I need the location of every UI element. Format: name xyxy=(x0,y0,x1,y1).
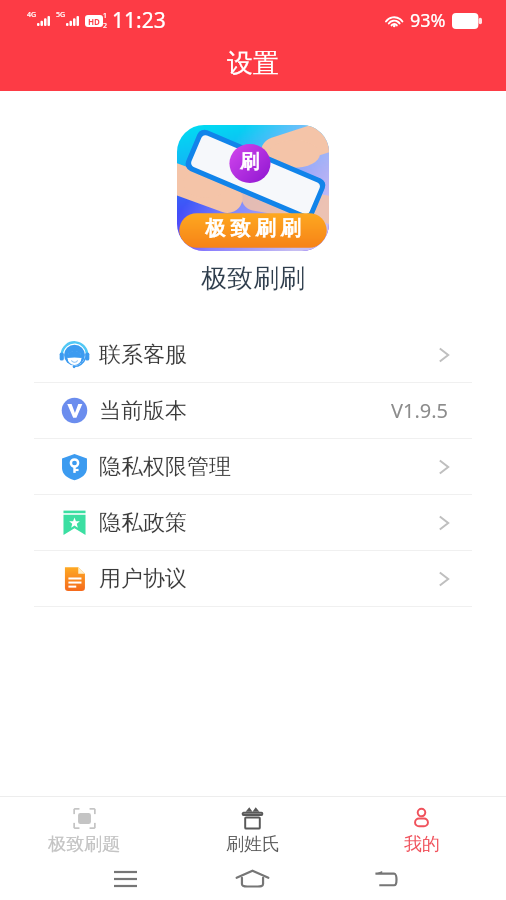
staticText: 刷姓氏 xyxy=(226,833,280,856)
staticText: 1 xyxy=(103,11,108,21)
staticText: 2 xyxy=(103,21,108,31)
staticText: 联系客服 xyxy=(99,341,187,369)
button[interactable]: Recents xyxy=(62,857,189,900)
staticText: 隐私政策 xyxy=(99,509,187,537)
staticText: 设置 xyxy=(227,47,279,80)
button[interactable]: Home xyxy=(189,857,316,900)
staticText: 93% xyxy=(410,8,446,33)
button[interactable]: 隐私政策 xyxy=(0,495,506,551)
staticText: 用户协议 xyxy=(99,565,187,593)
button[interactable]: 刷姓氏 xyxy=(168,797,337,857)
staticText: 极 致 刷 刷 xyxy=(205,214,301,241)
staticText: 刷 xyxy=(240,150,259,174)
button[interactable]: 隐私权限管理 xyxy=(0,439,506,495)
staticText: 隐私权限管理 xyxy=(99,453,231,481)
staticText: HD xyxy=(88,16,100,27)
staticText: V1.9.5 xyxy=(391,397,449,424)
staticText: 4G xyxy=(27,10,37,20)
button[interactable]: 用户协议 xyxy=(0,551,506,607)
staticText: 极致刷题 xyxy=(48,833,120,856)
staticText: 当前版本 xyxy=(99,397,187,425)
staticText: 我的 xyxy=(404,833,440,856)
button[interactable]: Back xyxy=(316,857,443,900)
button[interactable]: 当前版本 xyxy=(0,383,506,439)
button[interactable]: 我的 xyxy=(337,797,506,857)
staticText: 5G xyxy=(56,10,66,20)
staticText: 极致刷刷 xyxy=(201,262,305,295)
staticText: 11:23 xyxy=(112,6,166,35)
button[interactable]: 联系客服 xyxy=(0,327,506,383)
button[interactable]: 极致刷题 xyxy=(0,797,168,857)
